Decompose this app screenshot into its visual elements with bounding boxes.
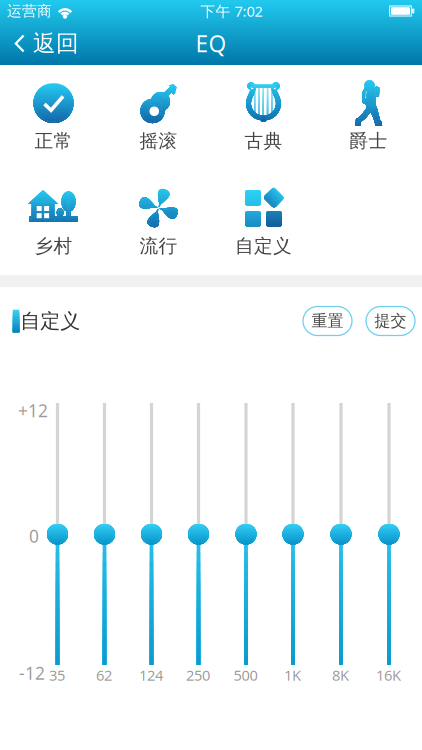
button[interactable]: 摇滚 [106, 82, 211, 150]
staticText: 8K [332, 665, 349, 685]
staticText: 自定义 [235, 234, 292, 257]
staticText: 1K [284, 665, 301, 685]
staticText: 62 [96, 665, 112, 685]
staticText: 16K [376, 665, 401, 685]
staticText: 古典 [244, 129, 282, 152]
button[interactable]: 正常 [1, 82, 106, 150]
staticText: 0 [29, 524, 39, 547]
staticText: 流行 [139, 234, 177, 257]
staticText: 重置 [311, 311, 343, 331]
staticText: 250 [186, 665, 210, 685]
staticText: 摇滚 [139, 129, 177, 152]
button[interactable]: 爵士 [316, 82, 421, 150]
staticText: 35 [49, 665, 65, 685]
staticText: -12 [19, 661, 45, 684]
staticText: 爵士 [349, 129, 387, 152]
staticText: 运营商 [7, 2, 52, 20]
button[interactable]: 流行 [106, 187, 211, 255]
staticText: 返回 [33, 30, 79, 57]
staticText: 124 [139, 665, 163, 685]
staticText: 下午 7:02 [200, 1, 262, 21]
staticText: 自定义 [20, 309, 80, 333]
button[interactable]: 古典 [211, 82, 316, 150]
button[interactable]: 提交 [366, 306, 415, 335]
staticText: 提交 [374, 311, 406, 331]
button[interactable]: 乡村 [1, 187, 106, 255]
button[interactable]: 返回 [0, 23, 89, 64]
button[interactable]: 自定义 [211, 187, 316, 255]
button[interactable]: 重置 [303, 306, 352, 335]
staticText: +12 [18, 399, 48, 422]
staticText: 乡村 [34, 234, 72, 257]
staticText: 500 [233, 665, 257, 685]
staticText: 正常 [34, 129, 72, 152]
staticText: EQ [195, 28, 226, 58]
